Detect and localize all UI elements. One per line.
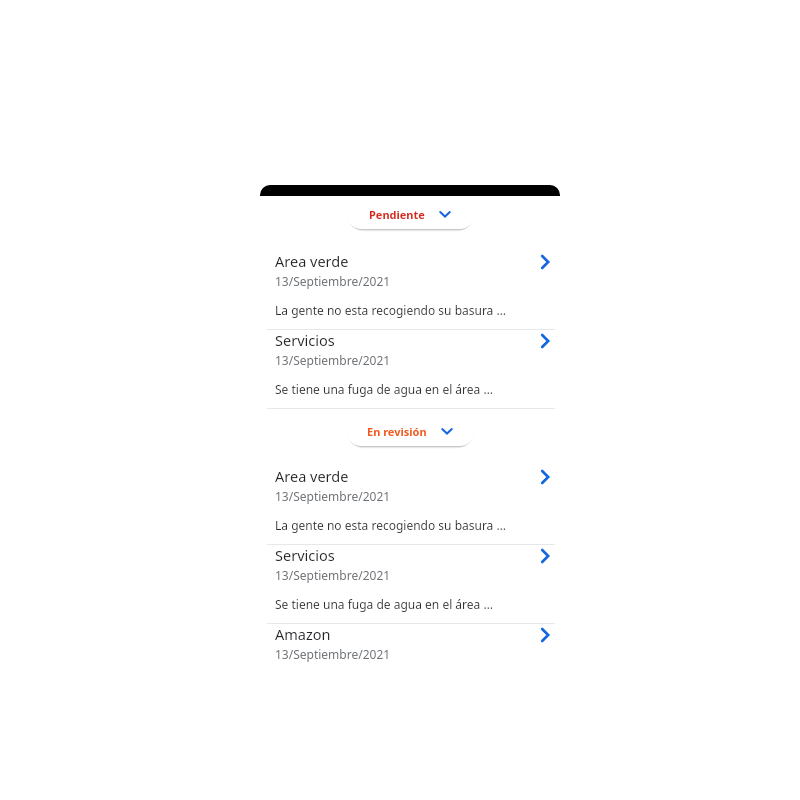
staticText: En revisión bbox=[367, 424, 427, 439]
staticText: 13/Septiembre/2021 bbox=[275, 646, 391, 662]
staticText: La gente no esta recogiendo su basura … bbox=[275, 302, 506, 318]
button[interactable]: Servicios bbox=[260, 330, 560, 408]
button[interactable]: Servicios bbox=[260, 545, 560, 623]
staticText: Se tiene una fuga de agua en el área … bbox=[275, 381, 493, 397]
staticText: Amazon bbox=[275, 624, 331, 644]
other: Open report bbox=[535, 331, 555, 351]
button[interactable]: Area verde bbox=[260, 251, 560, 329]
button[interactable]: Pendiente bbox=[346, 198, 475, 229]
other: Open report bbox=[535, 546, 555, 566]
staticText: 13/Septiembre/2021 bbox=[275, 273, 391, 289]
staticText: Se tiene una fuga de agua en el área … bbox=[275, 596, 493, 612]
other: Expand bbox=[437, 206, 453, 222]
staticText: Area verde bbox=[275, 251, 349, 271]
other: Open report bbox=[535, 252, 555, 272]
staticText: Servicios bbox=[275, 330, 335, 350]
button[interactable]: En revisión bbox=[346, 415, 475, 446]
staticText: Area verde bbox=[275, 466, 349, 486]
staticText: 13/Septiembre/2021 bbox=[275, 567, 391, 583]
button[interactable]: Area verde bbox=[260, 466, 560, 544]
staticText: 13/Septiembre/2021 bbox=[275, 352, 391, 368]
other: Expand bbox=[439, 423, 455, 439]
other: Open report bbox=[535, 625, 555, 645]
other: Open report bbox=[535, 467, 555, 487]
staticText: La gente no esta recogiendo su basura … bbox=[275, 517, 506, 533]
staticText: 13/Septiembre/2021 bbox=[275, 488, 391, 504]
button[interactable]: Amazon bbox=[260, 624, 560, 662]
staticText: Pendiente bbox=[369, 207, 425, 222]
staticText: Servicios bbox=[275, 545, 335, 565]
